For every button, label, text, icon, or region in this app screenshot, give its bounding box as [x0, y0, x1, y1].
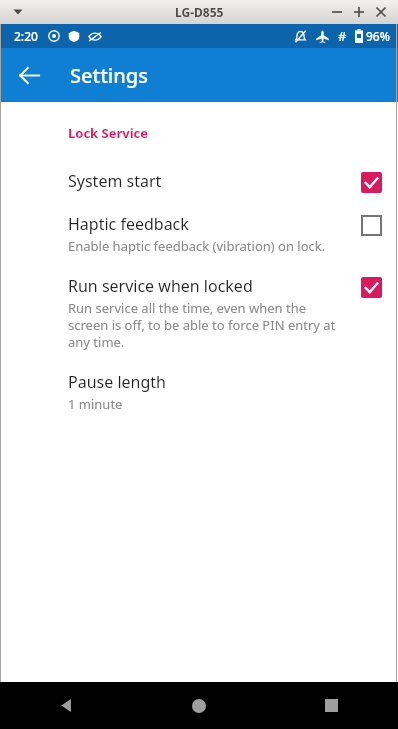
button[interactable]: Minimize — [326, 1, 348, 23]
staticText: Enable haptic feedback (vibration) on lo… — [68, 237, 326, 255]
button[interactable]: Haptic feedback — [0, 203, 398, 265]
button[interactable]: Pause length — [0, 361, 398, 423]
staticText: Lock Service — [68, 124, 149, 142]
button[interactable]: Maximize — [348, 1, 370, 23]
button[interactable]: Recent apps — [265, 682, 398, 729]
staticText: Haptic feedback — [68, 213, 189, 235]
button[interactable]: System start — [361, 172, 382, 193]
button[interactable]: Close — [370, 1, 392, 23]
button[interactable]: Menu — [10, 4, 26, 20]
button[interactable]: Run service when locked — [361, 277, 382, 298]
staticText: Settings — [70, 62, 148, 89]
staticText: LG-D855 — [175, 4, 224, 20]
staticText: System start — [68, 170, 162, 192]
button[interactable]: Run service when locked — [0, 265, 398, 361]
button[interactable]: Back — [0, 682, 132, 729]
staticText: Run service when locked — [68, 275, 253, 297]
staticText: Run service all the time, even when the … — [68, 299, 336, 351]
staticText: # — [338, 27, 347, 45]
staticText: 1 minute — [68, 395, 123, 413]
button[interactable]: Back — [8, 54, 50, 96]
staticText: 96% — [366, 28, 390, 44]
button[interactable]: System start — [0, 160, 398, 203]
staticText: Pause length — [68, 371, 166, 393]
button[interactable]: Home — [132, 682, 265, 729]
staticText: 2:20 — [14, 28, 38, 44]
button[interactable]: Haptic feedback — [361, 215, 382, 236]
